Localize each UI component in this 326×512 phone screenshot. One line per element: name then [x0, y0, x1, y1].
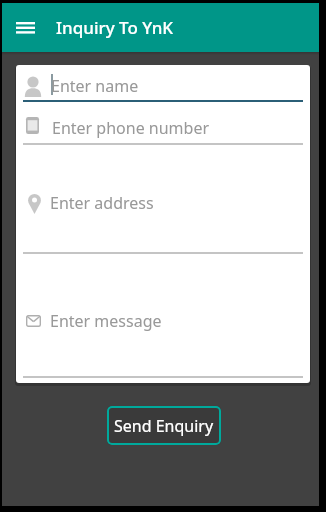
button[interactable]: Enter phone number: [52, 113, 210, 143]
button[interactable]: [16, 22, 36, 34]
button[interactable]: Send Enquiry: [107, 406, 221, 445]
button[interactable]: Enter name: [51, 71, 139, 101]
staticText: Send Enquiry: [114, 415, 214, 437]
staticText: Enter message: [50, 310, 162, 332]
staticText: Inquiry To YnK: [56, 16, 174, 39]
button[interactable]: Inquiry To YnK: [2, 3, 319, 52]
staticText: Enter address: [50, 192, 154, 214]
button[interactable]: Enter message: [50, 306, 162, 336]
staticText: Enter name: [51, 75, 139, 97]
staticText: Enter phone number: [52, 117, 210, 139]
button[interactable]: Enter address: [50, 188, 154, 218]
